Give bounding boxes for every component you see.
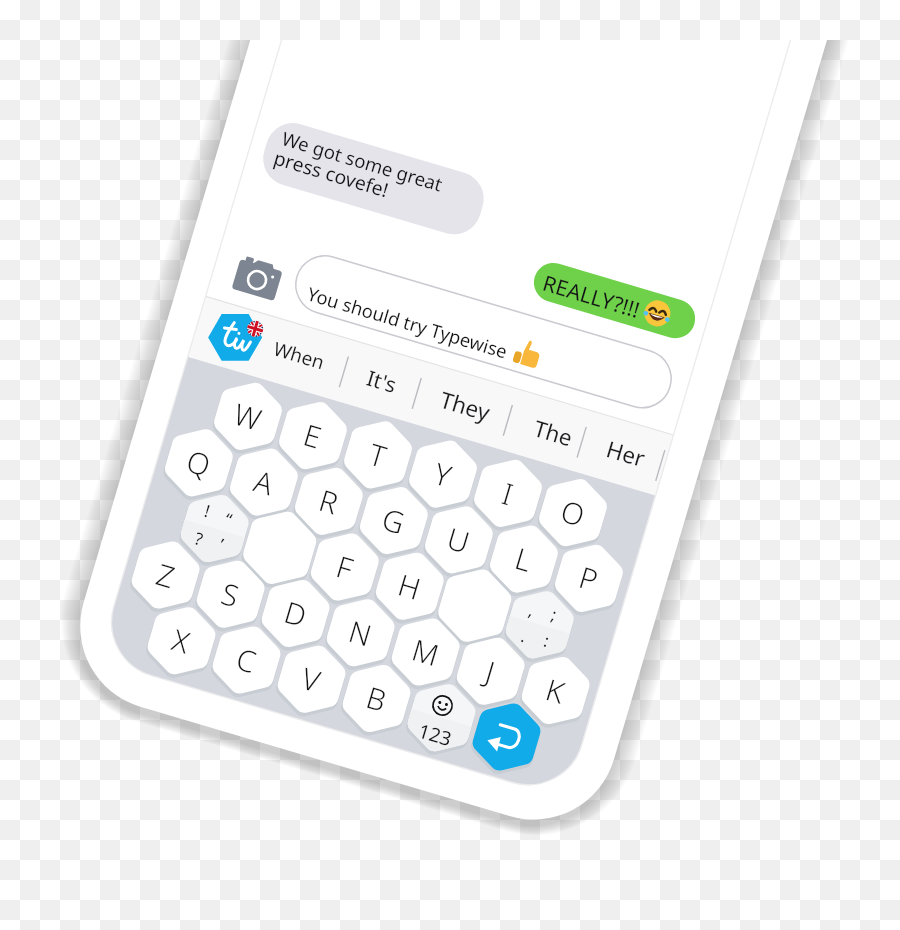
button[interactable]: Typewise keyboard settings [202, 304, 269, 371]
button[interactable]: R [288, 458, 369, 546]
button[interactable]: V [271, 635, 352, 724]
button[interactable]: Her [592, 421, 660, 486]
button[interactable]: U [419, 496, 499, 585]
button[interactable]: Message input: You should try Typewise [289, 249, 679, 415]
button[interactable]: E [273, 392, 354, 480]
button[interactable]: F [304, 523, 385, 611]
button[interactable]: N [320, 589, 401, 678]
button[interactable]: Emoji and numbers [402, 674, 482, 762]
button[interactable]: X [142, 597, 222, 685]
button[interactable]: More punctuation [500, 581, 581, 669]
button[interactable]: G [354, 477, 434, 565]
button[interactable]: A [224, 439, 305, 527]
button[interactable]: W [208, 372, 289, 461]
button[interactable]: I [468, 449, 549, 538]
button[interactable]: They [426, 371, 505, 440]
button[interactable]: Q [159, 419, 239, 508]
button[interactable]: When [260, 322, 340, 391]
button[interactable]: B [336, 654, 417, 743]
button[interactable]: C [207, 616, 288, 705]
button[interactable]: D [255, 570, 336, 658]
button[interactable]: S [191, 551, 271, 639]
button[interactable]: Z [126, 531, 206, 620]
button[interactable]: Camera [231, 250, 286, 305]
button[interactable]: Y [403, 430, 483, 519]
button[interactable]: Space [240, 504, 321, 592]
button[interactable]: It's [353, 350, 412, 413]
button[interactable]: O [533, 469, 614, 557]
button[interactable]: Enter [467, 693, 547, 782]
button[interactable]: L [484, 516, 564, 604]
button[interactable]: J [451, 628, 531, 716]
button[interactable]: H [370, 542, 450, 631]
button[interactable]: M [386, 608, 466, 697]
button[interactable]: The [520, 399, 588, 465]
button[interactable]: P [549, 535, 630, 623]
button[interactable]: K [516, 647, 596, 736]
button[interactable]: Space [435, 561, 515, 650]
button[interactable]: T [338, 411, 418, 499]
button[interactable]: Punctuation [175, 485, 256, 573]
